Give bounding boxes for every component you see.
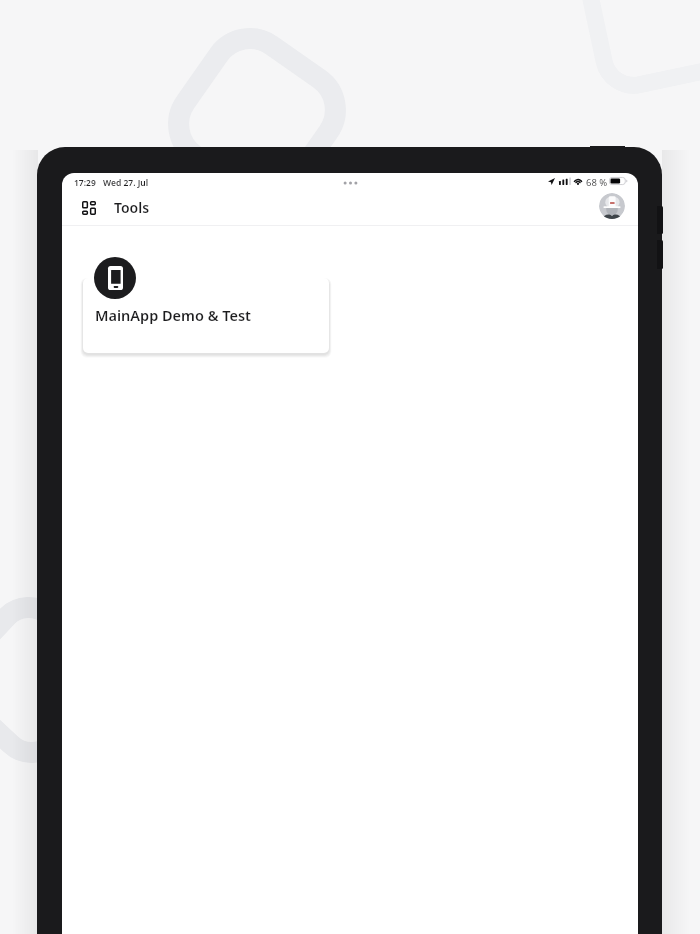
staticText: Wed 27. Jul <box>103 177 149 189</box>
staticText: MainApp Demo & Test <box>95 305 252 325</box>
staticText: 17:29 <box>74 177 96 189</box>
button[interactable]: Apps <box>75 194 103 222</box>
staticText: 68 % <box>586 176 608 189</box>
button[interactable]: Profile <box>599 193 625 219</box>
button[interactable]: MainApp Demo & Test <box>83 278 329 353</box>
staticText: Tools <box>114 198 150 217</box>
button[interactable]: MainApp Demo & Test <box>94 257 136 299</box>
